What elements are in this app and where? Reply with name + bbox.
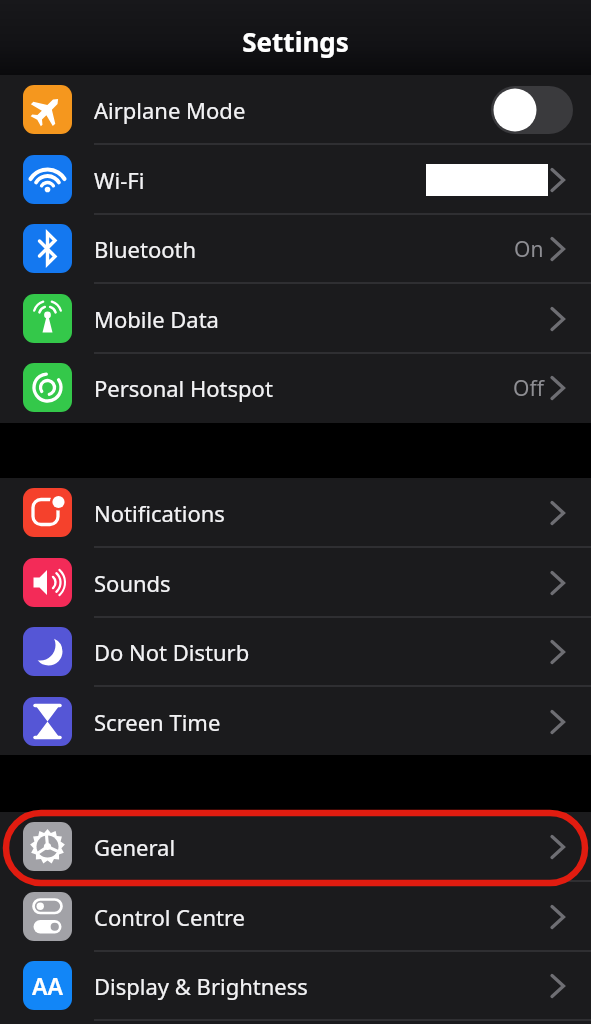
- button[interactable]: Notifications: [0, 478, 591, 548]
- staticText: Screen Time: [94, 707, 221, 737]
- other: Personal Hotspot: [23, 363, 72, 412]
- button[interactable]: Mobile Data: [0, 284, 591, 354]
- button[interactable]: Sounds: [0, 548, 591, 618]
- staticText: Settings: [0, 24, 591, 59]
- staticText: Wi-Fi: [94, 165, 145, 195]
- button[interactable]: Screen Time: [0, 687, 591, 757]
- button[interactable]: General: [0, 812, 591, 882]
- button[interactable]: Wi-Fi: [0, 145, 591, 215]
- other: Sounds: [23, 558, 72, 607]
- staticText: Do Not Disturb: [94, 637, 250, 667]
- other: Screen Time: [23, 697, 72, 746]
- button[interactable]: Do Not Disturb: [0, 617, 591, 687]
- staticText: Personal Hotspot: [94, 373, 273, 403]
- button[interactable]: Airplane Mode toggle, off: [491, 86, 573, 134]
- staticText: Airplane Mode: [94, 95, 246, 125]
- staticText: AA: [32, 970, 63, 1001]
- other: Mobile Data: [23, 294, 72, 343]
- staticText: General: [94, 832, 176, 862]
- other: Airplane Mode: [23, 85, 72, 134]
- staticText: On: [514, 235, 544, 264]
- button[interactable]: Personal Hotspot: [0, 353, 591, 423]
- staticText: Notifications: [94, 498, 225, 528]
- button[interactable]: Airplane Mode: [0, 75, 591, 145]
- staticText: Off: [513, 374, 544, 403]
- other: Bluetooth: [23, 224, 72, 273]
- other: Display & Brightness: [23, 961, 72, 1010]
- button[interactable]: Display & Brightness: [0, 951, 591, 1021]
- other: Control Centre: [23, 892, 72, 941]
- staticText: Sounds: [94, 568, 171, 598]
- other: Wi-Fi: [23, 155, 72, 204]
- button[interactable]: Control Centre: [0, 882, 591, 952]
- other: Do Not Disturb: [23, 627, 72, 676]
- staticText: Mobile Data: [94, 304, 219, 334]
- other: General: [23, 822, 72, 871]
- staticText: Bluetooth: [94, 234, 197, 264]
- staticText: Display & Brightness: [94, 971, 308, 1001]
- button[interactable]: Bluetooth: [0, 214, 591, 284]
- other: Notifications: [23, 488, 72, 537]
- staticText: Control Centre: [94, 902, 246, 932]
